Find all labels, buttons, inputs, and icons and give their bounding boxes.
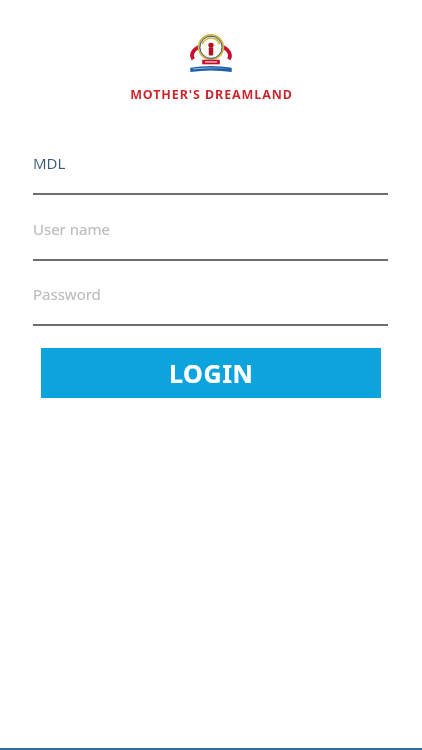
staticText: MDL (33, 153, 66, 173)
staticText: User name (33, 219, 110, 239)
button[interactable]: Password field (0, 278, 422, 326)
staticText: LOGIN (169, 356, 254, 390)
button[interactable]: MDL field (0, 147, 422, 195)
staticText: Password (33, 284, 101, 304)
button[interactable]: LOGIN (41, 348, 381, 398)
other: School logo (189, 30, 233, 78)
button[interactable]: User name field (0, 213, 422, 261)
staticText: MOTHER'S DREAMLAND (130, 86, 293, 103)
